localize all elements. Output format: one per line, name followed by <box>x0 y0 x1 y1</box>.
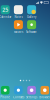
button[interactable]: Notes <box>12 5 25 19</box>
button[interactable]: Browser <box>38 86 50 99</box>
staticText: Movies <box>14 30 23 34</box>
staticText: Gallery <box>27 15 36 19</box>
button[interactable]: Settings <box>25 86 38 99</box>
staticText: Settings <box>26 95 37 99</box>
staticText: 25 <box>2 6 8 13</box>
staticText: Calendar <box>0 15 11 19</box>
staticText: Software <box>26 30 37 34</box>
staticText: Notes <box>14 15 22 19</box>
staticText: Browser <box>39 95 50 99</box>
button[interactable]: 25 <box>0 5 11 19</box>
button[interactable]: Phone <box>0 86 11 99</box>
staticText: Phone <box>0 95 10 99</box>
button[interactable]: Movies <box>12 20 25 34</box>
staticText: Contacts <box>13 95 24 99</box>
button[interactable]: Gallery <box>25 5 38 19</box>
button[interactable]: Software <box>25 20 38 34</box>
button[interactable]: Contacts <box>12 86 25 99</box>
